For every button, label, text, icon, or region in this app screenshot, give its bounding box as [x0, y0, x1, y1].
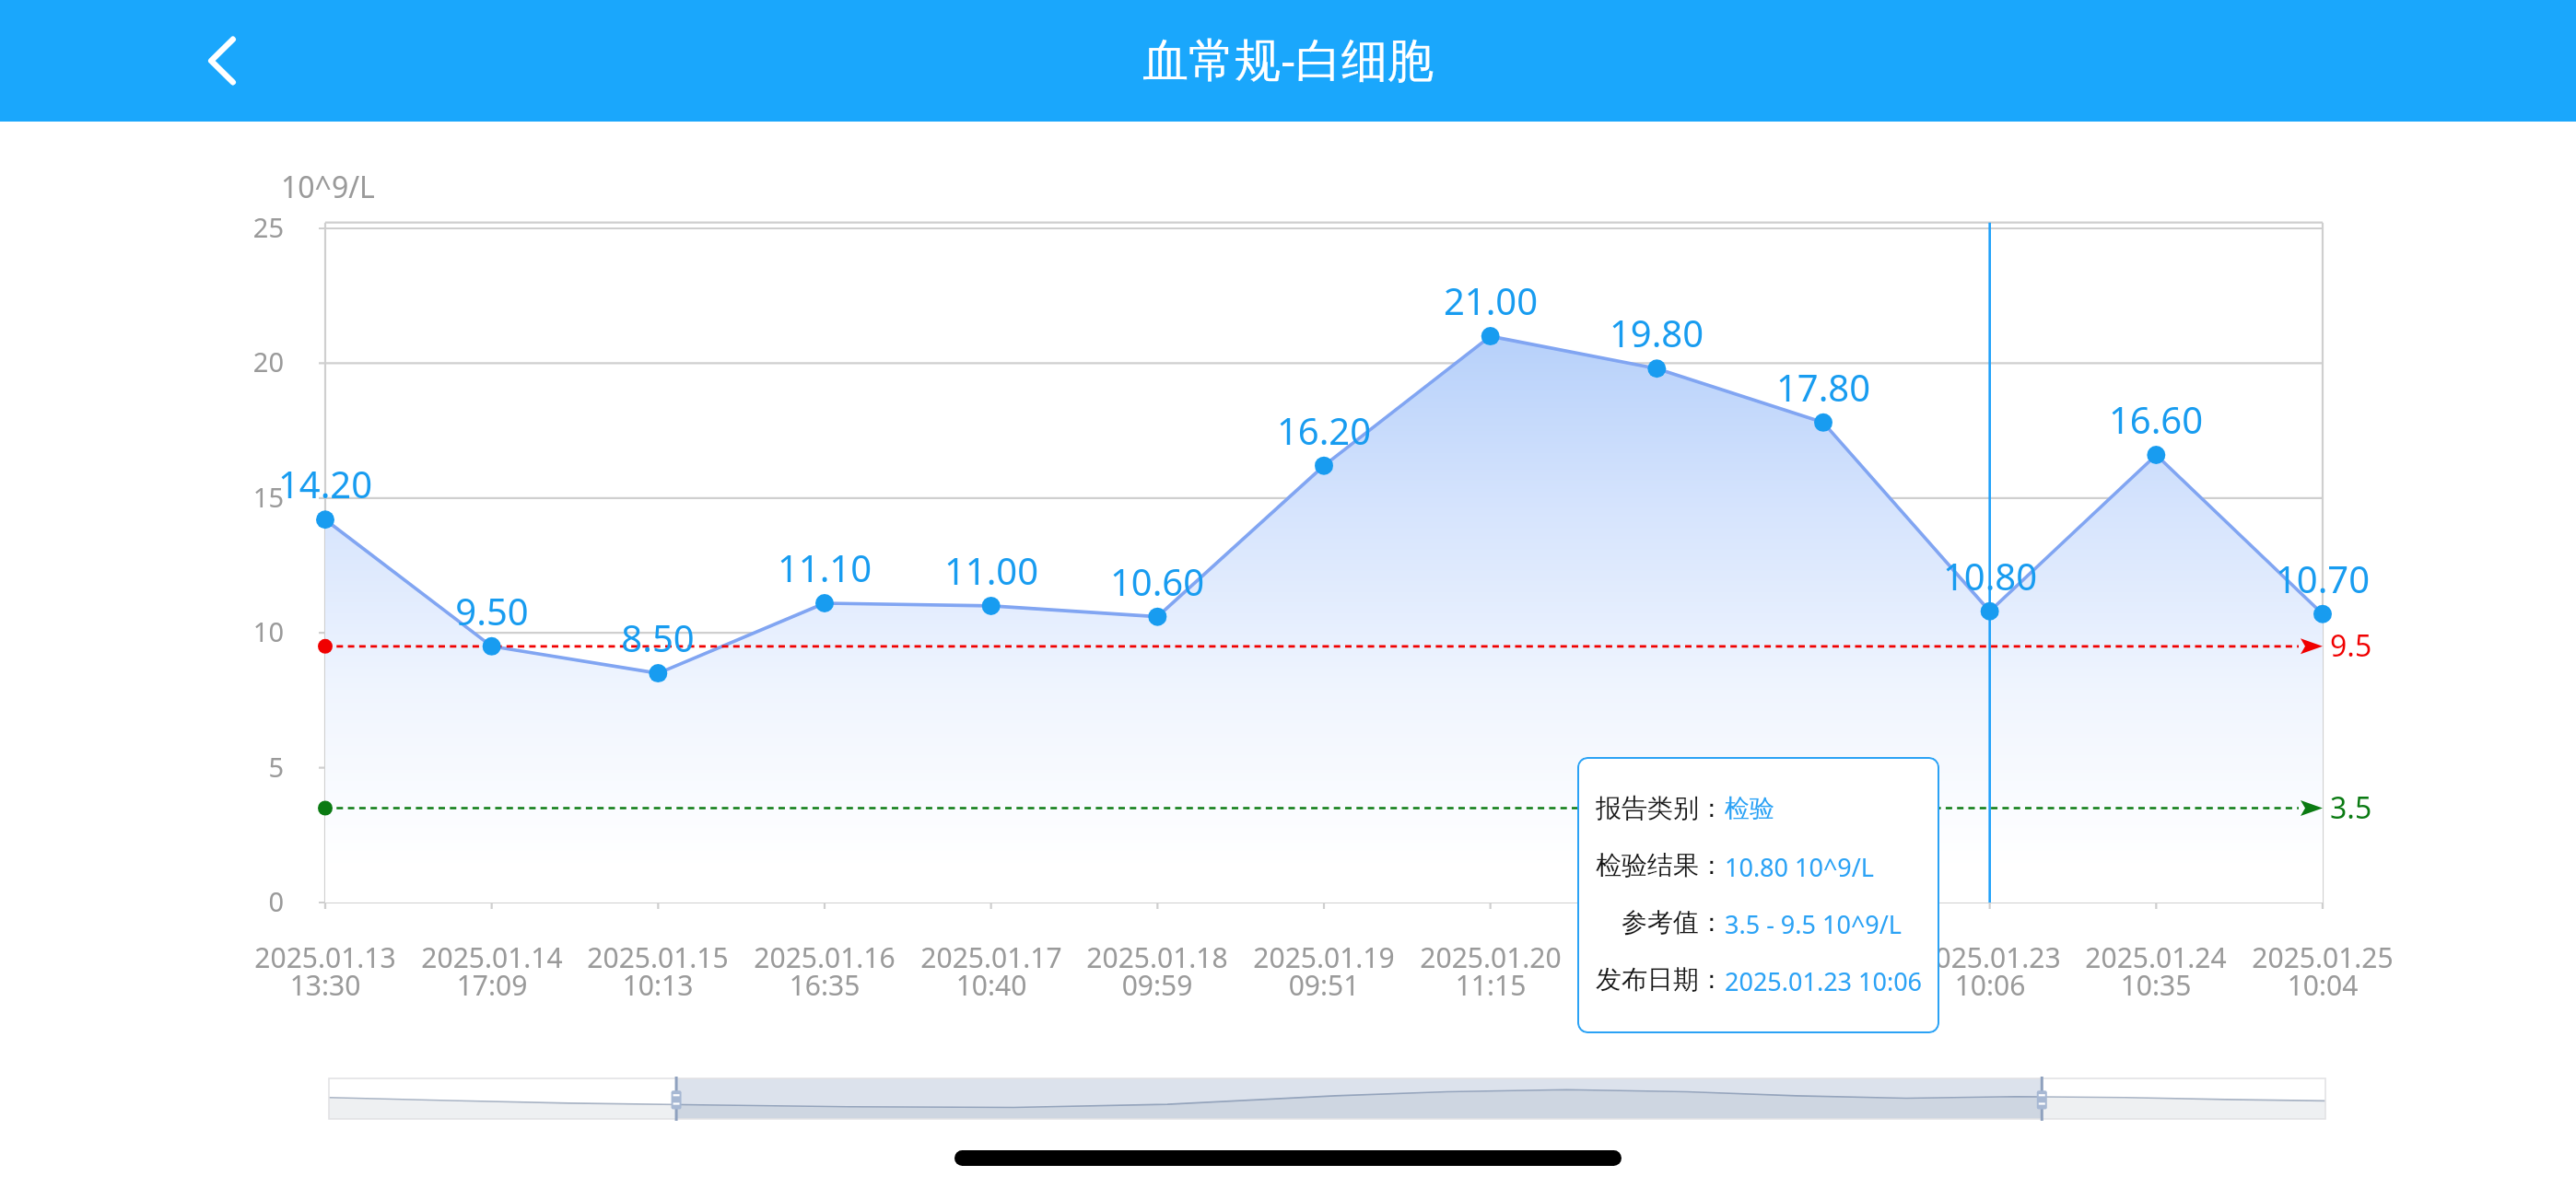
staticText: 2025.01.19: [1223, 938, 1425, 976]
staticText: 10.70: [2231, 553, 2415, 603]
button[interactable]: Time range selector: [329, 1078, 2325, 1119]
staticText: 9.5: [2330, 625, 2372, 666]
staticText: 2025.01.22: [1722, 938, 1925, 976]
staticText: 发布日期：: [1585, 963, 1725, 996]
staticText: 检验结果：: [1585, 849, 1725, 881]
staticText: 16:35: [723, 966, 926, 1004]
staticText: 2025.01.14: [391, 938, 593, 976]
staticText: 报告类别：: [1585, 792, 1725, 824]
staticText: 5: [210, 749, 284, 785]
staticText: 10.60: [1065, 556, 1249, 606]
staticText: 0: [210, 883, 284, 919]
staticText: 09:51: [1223, 966, 1425, 1004]
staticText: 17:09: [391, 966, 593, 1004]
staticText: 2025.01.16: [723, 938, 926, 976]
staticText: 16.20: [1232, 405, 1416, 455]
staticText: 2025.01.23 10:06: [1725, 964, 1923, 998]
staticText: 2025.01.15: [556, 938, 759, 976]
staticText: 8.50: [566, 612, 750, 662]
staticText: 10:22: [1722, 966, 1925, 1004]
staticText: 检验: [1725, 793, 1774, 824]
staticText: 2025.01.20: [1389, 938, 1592, 976]
button[interactable]: 报告类别：: [1577, 757, 1939, 1033]
staticText: 15: [210, 479, 284, 515]
staticText: 21.00: [1399, 275, 1583, 325]
staticText: 2025.01.21: [1555, 938, 1758, 976]
staticText: 14.20: [233, 459, 417, 508]
button[interactable]: Back: [167, 6, 277, 116]
staticText: 10:40: [890, 966, 1093, 1004]
staticText: 10:13: [556, 966, 759, 1004]
staticText: 10.80 10^9/L: [1725, 850, 1874, 884]
staticText: 25: [210, 209, 284, 245]
staticText: 10.80: [1898, 551, 2082, 600]
staticText: 2025.01.18: [1056, 938, 1259, 976]
staticText: 9.50: [400, 586, 584, 635]
staticText: 20: [210, 344, 284, 379]
staticText: 2025.01.13: [224, 938, 427, 976]
staticText: 10:35: [2055, 966, 2257, 1004]
staticText: 3.5 - 9.5 10^9/L: [1725, 907, 1902, 941]
staticText: 2025.01.23: [1889, 938, 2091, 976]
staticText: 参考值：: [1585, 906, 1725, 938]
staticText: 2025.01.25: [2221, 938, 2424, 976]
staticText: 11.10: [732, 542, 917, 592]
staticText: 3.5: [2330, 787, 2372, 828]
staticText: 10:04: [2221, 966, 2424, 1004]
staticText: 17.80: [1731, 362, 1915, 412]
staticText: 16.60: [2064, 394, 2248, 444]
staticText: 11:15: [1389, 966, 1592, 1004]
staticText: 09:59: [1056, 966, 1259, 1004]
staticText: 11.00: [899, 545, 1083, 595]
staticText: 2025.01.17: [890, 938, 1093, 976]
staticText: 血常规-白细胞: [1142, 28, 1434, 90]
staticText: 09:30: [1555, 966, 1758, 1004]
staticText: 10^9/L: [281, 167, 375, 207]
staticText: 13:30: [224, 966, 427, 1004]
staticText: 10:06: [1889, 966, 2091, 1004]
staticText: 2025.01.24: [2055, 938, 2257, 976]
staticText: 10: [210, 613, 284, 649]
staticText: 19.80: [1564, 308, 1749, 357]
